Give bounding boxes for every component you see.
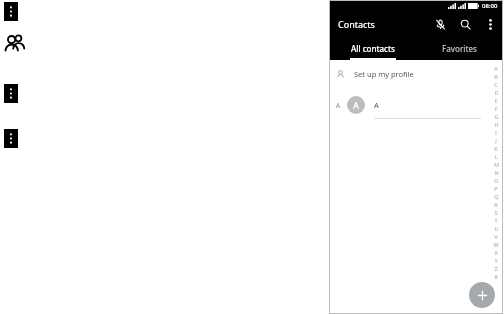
staticText: L [495, 153, 498, 160]
staticText: P [494, 185, 498, 192]
button[interactable]: More options [4, 2, 18, 21]
staticText: E [494, 97, 498, 104]
staticText: Contacts [338, 18, 375, 30]
staticText: A [494, 65, 498, 72]
button[interactable]: Favorites [416, 36, 503, 60]
staticText: Favorites [442, 43, 477, 54]
staticText: N [494, 169, 499, 176]
staticText: B [494, 73, 498, 80]
button[interactable]: All contacts [329, 36, 416, 60]
staticText: W [493, 241, 499, 248]
staticText: S [494, 209, 498, 216]
staticText: C [494, 81, 498, 88]
staticText: R [494, 201, 498, 208]
staticText: # [494, 273, 498, 280]
staticText: A [353, 99, 359, 111]
staticText: Set up my profile [354, 69, 414, 79]
staticText: G [494, 113, 499, 120]
staticText: T [494, 217, 498, 224]
staticText: Q [494, 193, 499, 200]
staticText: I [495, 129, 497, 136]
button[interactable]: More options [482, 16, 498, 32]
staticText: K [494, 145, 498, 152]
button[interactable]: More options [4, 84, 18, 103]
button[interactable]: Contacts [2, 31, 28, 57]
button[interactable]: Set up my profile [329, 64, 503, 84]
staticText: Z [494, 265, 498, 272]
button[interactable]: Alphabet index [489, 64, 503, 280]
staticText: A [374, 100, 379, 110]
staticText: J [495, 137, 497, 144]
button[interactable]: Search [457, 16, 473, 32]
staticText: H [494, 121, 499, 128]
button[interactable]: Add contact [469, 282, 495, 308]
staticText: V [494, 233, 498, 240]
button[interactable]: A [329, 92, 503, 118]
staticText: O [494, 177, 499, 184]
staticText: M [494, 161, 499, 168]
staticText: D [494, 89, 499, 96]
staticText: X [494, 249, 498, 256]
staticText: F [495, 105, 498, 112]
button[interactable]: More options [4, 129, 18, 148]
button[interactable]: Voice search off [432, 16, 448, 32]
staticText: All contacts [351, 43, 395, 54]
staticText: Y [494, 257, 498, 264]
staticText: A [336, 101, 341, 110]
staticText: U [494, 225, 499, 232]
staticText: 08:00 [482, 2, 498, 10]
